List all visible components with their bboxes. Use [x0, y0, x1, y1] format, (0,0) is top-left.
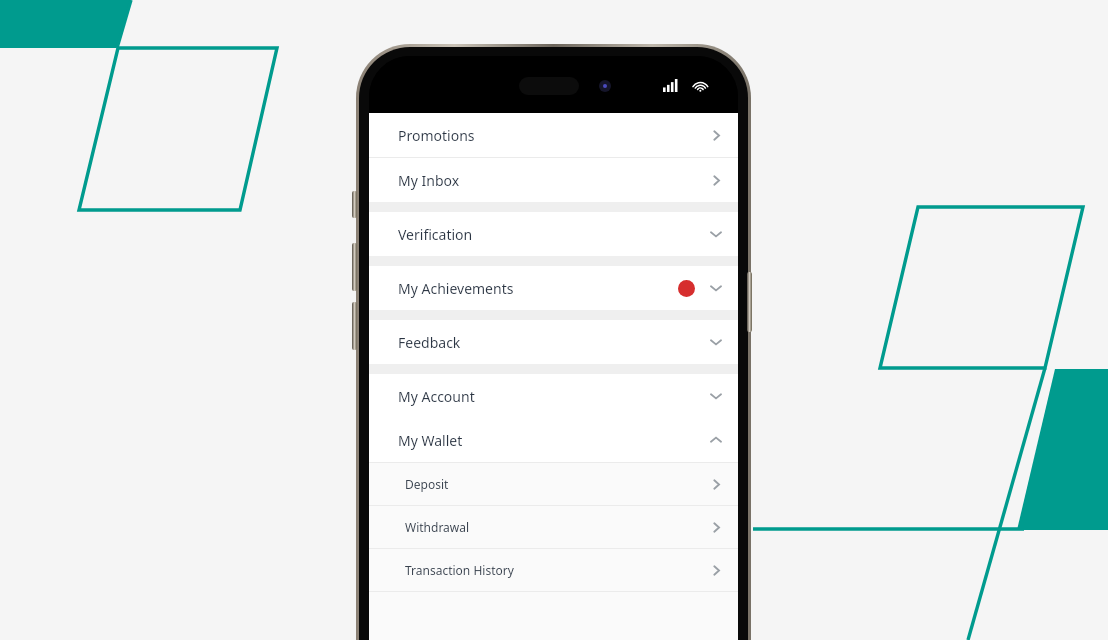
button[interactable]: Withdrawal — [369, 506, 738, 548]
staticText: Withdrawal — [405, 519, 470, 535]
staticText: My Wallet — [398, 431, 463, 450]
other: Ring silent switch — [352, 191, 357, 218]
staticText: Promotions — [398, 126, 475, 145]
button[interactable]: Verification — [369, 212, 738, 256]
button[interactable]: Power — [747, 272, 752, 332]
button[interactable]: My Inbox — [369, 158, 738, 202]
staticText: Transaction History — [405, 562, 514, 578]
button[interactable]: Feedback — [369, 320, 738, 364]
staticText: My Achievements — [398, 279, 514, 298]
button[interactable]: Volume up — [352, 243, 357, 291]
button[interactable]: Deposit — [369, 463, 738, 505]
button[interactable]: Transaction History — [369, 549, 738, 591]
button[interactable]: Promotions — [369, 113, 738, 157]
staticText: Verification — [398, 225, 473, 244]
staticText: Deposit — [405, 476, 449, 492]
staticText: Feedback — [398, 333, 461, 352]
button[interactable]: My Account — [369, 374, 738, 418]
button[interactable]: My Wallet — [369, 418, 738, 462]
button[interactable]: My Achievements — [369, 266, 738, 310]
button[interactable]: Volume down — [352, 302, 357, 350]
staticText: My Account — [398, 387, 475, 406]
staticText: My Inbox — [398, 171, 460, 190]
